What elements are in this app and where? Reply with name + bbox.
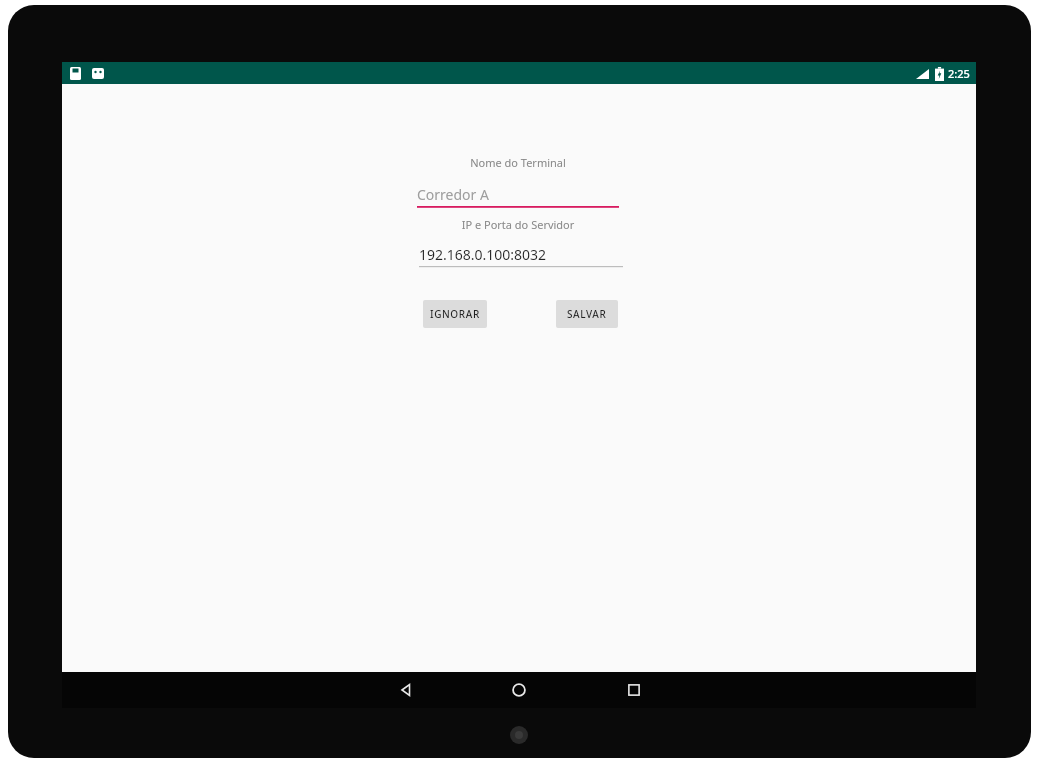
button[interactable]: Back xyxy=(388,672,424,708)
staticText: SALVAR xyxy=(567,307,607,321)
button[interactable]: Corredor A xyxy=(417,180,619,208)
button[interactable]: SALVAR xyxy=(556,300,618,328)
other: Home button xyxy=(505,721,533,749)
staticText: IGNORAR xyxy=(430,307,480,321)
staticText: 192.168.0.100:8032 xyxy=(419,245,547,264)
button[interactable]: 192.168.0.100:8032 xyxy=(419,240,623,268)
staticText: Corredor A xyxy=(417,185,489,204)
staticText: Nome do Terminal xyxy=(418,155,618,170)
staticText: IP e Porta do Servidor xyxy=(418,217,618,232)
button[interactable]: Recent apps xyxy=(616,672,652,708)
button[interactable]: IGNORAR xyxy=(423,300,487,328)
staticText: 2:25 xyxy=(948,66,970,81)
button[interactable]: Home xyxy=(501,672,537,708)
